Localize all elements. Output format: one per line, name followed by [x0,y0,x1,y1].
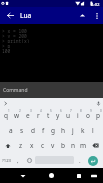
button[interactable]: p [93,108,103,123]
button[interactable]: o [83,108,93,123]
button[interactable]: . [75,153,85,168]
button[interactable]: w [11,108,22,123]
staticText: b [61,141,65,150]
staticText: 7 [70,109,72,113]
staticText: t [47,111,50,120]
staticText: 3 [30,109,32,113]
staticText: i [77,111,79,120]
button[interactable]: m [78,138,88,153]
button[interactable]: y [53,108,63,123]
staticText: e [26,111,30,120]
button[interactable]: x [26,138,37,153]
staticText: v [51,141,55,150]
button[interactable]: Symbols [0,153,14,168]
button[interactable]: Run [74,7,90,24]
staticText: w [14,111,20,120]
staticText: g [51,126,55,135]
button[interactable]: h [58,123,68,138]
staticText: o [86,111,90,120]
staticText: 9 [90,109,92,113]
staticText: p [96,111,100,120]
button[interactable]: c [37,138,48,153]
staticText: u [66,111,71,120]
staticText: > y = 200 [2,33,27,38]
button[interactable]: Expand toolbar [0,98,10,108]
staticText: a [9,126,13,135]
button[interactable]: t [43,108,53,123]
staticText: 100 [2,48,11,53]
button[interactable]: k [78,123,88,138]
button[interactable]: u [63,108,73,123]
staticText: h [61,126,66,135]
staticText: 4 [40,109,42,113]
button[interactable]: Switch keyboard [86,168,102,183]
button[interactable]: j [68,123,78,138]
staticText: x [30,141,34,150]
button[interactable]: , [13,153,23,168]
button[interactable]: Shift [0,138,15,153]
staticText: m [80,141,87,150]
button[interactable]: f [38,123,48,138]
staticText: Lua [20,11,32,20]
button[interactable]: q [0,108,11,123]
button[interactable]: Back [13,168,33,183]
button[interactable]: Voice input [93,98,103,108]
staticText: 6 [60,109,62,113]
staticText: y [56,111,60,120]
staticText: . [79,157,81,165]
button[interactable]: v [48,138,58,153]
button[interactable]: s [16,123,27,138]
staticText: 5 [50,109,52,113]
staticText: 2 [19,109,21,113]
staticText: j [72,126,74,135]
staticText: n [71,141,76,150]
button[interactable]: Emoji [24,153,34,168]
staticText: l [92,126,94,135]
button[interactable]: l [88,123,98,138]
staticText: 1 [8,109,10,113]
staticText: > p [2,43,11,48]
button[interactable]: Backspace [88,138,103,153]
button[interactable]: b [58,138,68,153]
staticText: f [42,126,45,135]
staticText: s [20,126,24,135]
button[interactable]: i [73,108,83,123]
staticText: q [4,111,8,120]
button[interactable]: g [48,123,58,138]
staticText: 8 [80,109,82,113]
button[interactable]: Back [0,7,20,24]
button[interactable]: e [22,108,33,123]
button[interactable]: Command [0,82,103,98]
staticText: ?123 [2,158,12,164]
button[interactable]: Enter [85,153,101,168]
button[interactable]: d [27,123,38,138]
staticText: z [19,141,23,150]
button[interactable]: More options [90,7,103,24]
staticText: > print(x) [2,38,30,43]
staticText: 4:02 [91,1,100,7]
button[interactable]: Recent apps [69,168,89,183]
staticText: Command [3,87,28,94]
button[interactable]: z [15,138,26,153]
button[interactable]: a [5,123,16,138]
staticText: > x = 100 [2,28,27,33]
button[interactable]: r [33,108,43,123]
staticText: 0 [100,109,102,113]
staticText: c [41,141,45,150]
button[interactable]: Home [41,168,61,183]
staticText: d [31,126,35,135]
staticText: , [17,157,19,165]
staticText: r [37,111,40,120]
button[interactable]: n [68,138,78,153]
staticText: k [81,126,85,135]
